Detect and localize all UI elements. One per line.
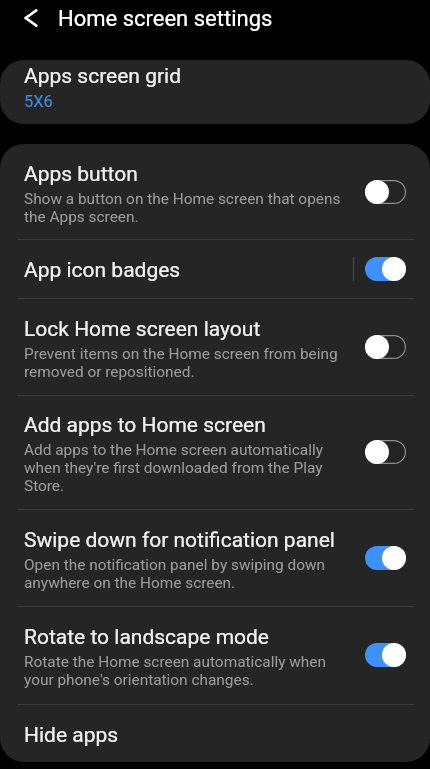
staticText: Prevent items on the Home screen from be… — [24, 345, 345, 381]
staticText: Show a button on the Home screen that op… — [24, 190, 345, 226]
button[interactable]: Rotate to landscape mode — [0, 606, 430, 704]
staticText: Rotate to landscape mode — [24, 625, 270, 650]
button[interactable]: Apps button — [0, 144, 430, 239]
button[interactable]: Add apps to Home screen — [0, 395, 430, 509]
staticText: Swipe down for notification panel — [24, 528, 335, 553]
button[interactable]: Switch off — [365, 180, 406, 204]
button[interactable]: Switch on — [365, 546, 406, 570]
staticText: Lock Home screen layout — [24, 317, 261, 342]
staticText: Open the notification panel by swiping d… — [24, 556, 345, 592]
staticText: Apps button — [24, 162, 138, 187]
staticText: Hide apps — [24, 723, 119, 748]
staticText: 5X6 — [24, 92, 53, 111]
button[interactable]: Switch off — [365, 440, 406, 464]
staticText: Rotate the Home screen automatically whe… — [24, 653, 345, 689]
button[interactable]: App icon badges — [0, 239, 430, 298]
button[interactable]: Hide apps — [0, 704, 430, 762]
button[interactable]: Navigate up — [13, 0, 49, 36]
staticText: App icon badges — [24, 258, 181, 283]
staticText: Add apps to Home screen — [24, 413, 266, 438]
button[interactable]: Lock Home screen layout — [0, 298, 430, 395]
staticText: Home screen settings — [58, 6, 273, 32]
button[interactable]: Switch on — [365, 257, 406, 281]
button[interactable]: Swipe down for notification panel — [0, 509, 430, 606]
staticText: Add apps to the Home screen automaticall… — [24, 441, 345, 495]
button[interactable]: Switch off — [365, 335, 406, 359]
button[interactable]: Apps screen grid — [0, 60, 430, 124]
staticText: Apps screen grid — [24, 64, 182, 89]
button[interactable]: Switch on — [365, 643, 406, 667]
